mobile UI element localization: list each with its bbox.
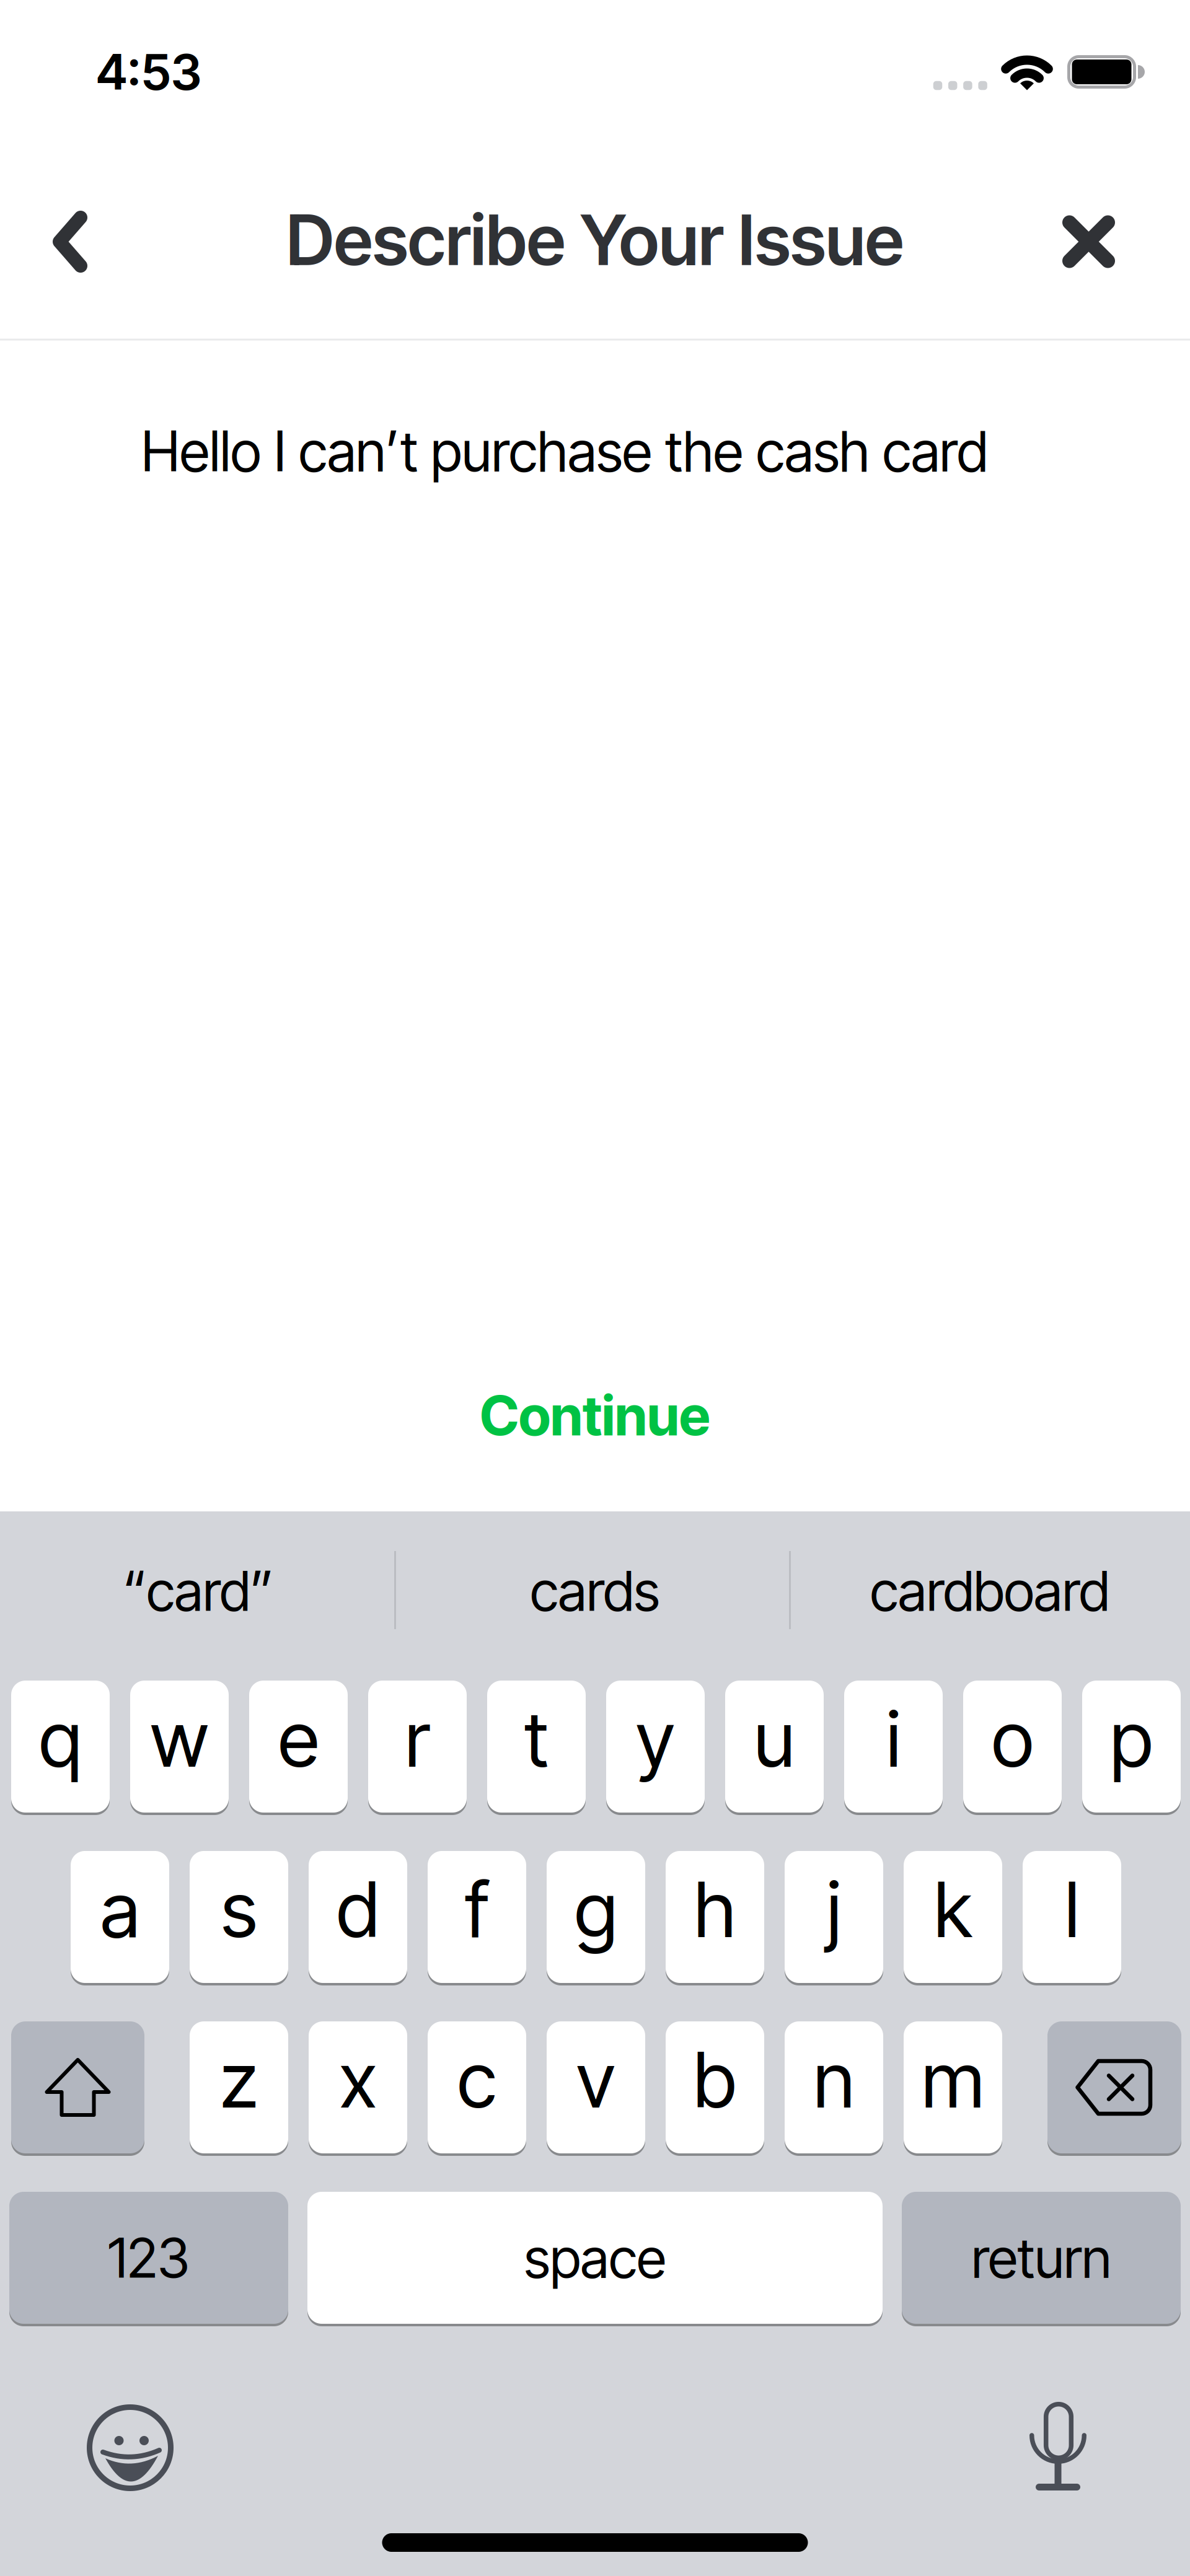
button[interactable]: 123 — [9, 2192, 288, 2324]
staticText: s — [221, 1865, 257, 1954]
button[interactable]: q — [11, 1681, 110, 1813]
button[interactable]: s — [190, 1851, 288, 1983]
staticText: b — [694, 2035, 736, 2125]
button[interactable]: n — [785, 2021, 883, 2153]
staticText: Hello I can’t purchase the cash card — [141, 418, 988, 484]
staticText: h — [694, 1865, 736, 1954]
staticText: Continue — [480, 1383, 710, 1448]
button[interactable]: Back — [39, 211, 101, 273]
button[interactable]: p — [1082, 1681, 1181, 1813]
staticText: j — [827, 1865, 841, 1954]
button[interactable]: o — [963, 1681, 1062, 1813]
staticText: “card” — [123, 1559, 274, 1623]
staticText: t — [524, 1694, 549, 1784]
button[interactable]: t — [487, 1681, 586, 1813]
staticText: x — [339, 2035, 377, 2125]
button[interactable]: v — [547, 2021, 645, 2153]
button[interactable]: c — [428, 2021, 526, 2153]
button[interactable]: j — [785, 1851, 883, 1983]
staticText: m — [922, 2035, 984, 2125]
button[interactable]: m — [904, 2021, 1002, 2153]
button[interactable]: cardboard — [795, 1512, 1185, 1669]
staticText: cardboard — [870, 1559, 1109, 1623]
button[interactable]: Continue — [480, 1383, 710, 1448]
button[interactable]: b — [666, 2021, 764, 2153]
button[interactable]: Shift — [11, 2021, 144, 2153]
button[interactable]: “card” — [3, 1512, 394, 1669]
button[interactable]: w — [130, 1681, 229, 1813]
staticText: q — [39, 1694, 82, 1784]
button[interactable]: i — [844, 1681, 943, 1813]
staticText: w — [150, 1694, 209, 1784]
staticText: c — [457, 2035, 496, 2125]
button[interactable]: l — [1023, 1851, 1121, 1983]
staticText: f — [465, 1865, 489, 1954]
staticText: o — [992, 1694, 1033, 1784]
staticText: cards — [530, 1559, 660, 1623]
button[interactable]: Emoji — [81, 2398, 180, 2497]
button[interactable]: e — [249, 1681, 348, 1813]
staticText: 123 — [108, 2226, 190, 2290]
button[interactable]: d — [309, 1851, 407, 1983]
staticText: v — [576, 2035, 615, 2125]
button[interactable]: f — [428, 1851, 526, 1983]
staticText: p — [1110, 1694, 1153, 1784]
staticText: r — [405, 1694, 430, 1784]
staticText: e — [278, 1694, 319, 1784]
button[interactable]: Delete — [1047, 2021, 1181, 2153]
button[interactable]: cards — [400, 1512, 790, 1669]
button[interactable]: u — [725, 1681, 824, 1813]
button[interactable]: x — [309, 2021, 407, 2153]
button[interactable]: r — [368, 1681, 467, 1813]
button[interactable]: Dictate — [1008, 2385, 1108, 2508]
button[interactable]: z — [190, 2021, 288, 2153]
button[interactable]: a — [71, 1851, 169, 1983]
button[interactable]: h — [666, 1851, 764, 1983]
staticText: u — [754, 1694, 795, 1784]
button[interactable]: space — [307, 2192, 883, 2324]
button[interactable]: return — [902, 2192, 1181, 2324]
staticText: Describe Your Issue — [286, 199, 904, 281]
staticText: k — [934, 1865, 972, 1954]
staticText: l — [1065, 1865, 1079, 1954]
staticText: i — [886, 1694, 901, 1784]
staticText: g — [575, 1865, 617, 1954]
button[interactable]: g — [547, 1851, 645, 1983]
staticText: z — [220, 2035, 258, 2125]
button[interactable]: Close — [1058, 211, 1120, 273]
staticText: y — [636, 1694, 675, 1784]
staticText: d — [337, 1865, 379, 1954]
button[interactable]: y — [606, 1681, 705, 1813]
staticText: a — [100, 1865, 139, 1954]
staticText: space — [524, 2226, 666, 2290]
staticText: return — [972, 2226, 1111, 2290]
button[interactable]: k — [904, 1851, 1002, 1983]
staticText: 4:53 — [96, 43, 201, 101]
staticText: n — [813, 2035, 854, 2125]
